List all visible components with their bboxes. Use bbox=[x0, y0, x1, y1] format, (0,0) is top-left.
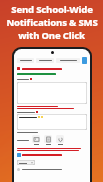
button[interactable]: Attach document bbox=[43, 135, 53, 145]
staticText: with One Click bbox=[18, 29, 85, 42]
button[interactable] bbox=[17, 160, 35, 165]
button[interactable] bbox=[17, 82, 87, 104]
button[interactable] bbox=[17, 114, 87, 130]
button[interactable]: Filter bbox=[82, 57, 87, 64]
button[interactable] bbox=[17, 153, 62, 157]
button[interactable] bbox=[56, 58, 80, 63]
button[interactable] bbox=[17, 58, 34, 63]
button[interactable] bbox=[36, 58, 54, 63]
staticText: Send School-Wide bbox=[11, 3, 93, 16]
button[interactable]: Attach file bbox=[55, 135, 65, 145]
staticText: Notifications & SMS bbox=[6, 16, 98, 29]
button[interactable]: Attach image bbox=[31, 135, 41, 145]
button[interactable] bbox=[17, 168, 62, 171]
